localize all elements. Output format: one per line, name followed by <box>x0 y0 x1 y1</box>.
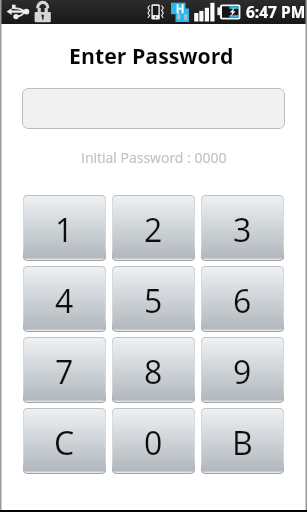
staticText: 8 <box>144 350 163 394</box>
button[interactable] <box>22 88 285 129</box>
staticText: Initial Password : 0000 <box>81 148 227 167</box>
button[interactable]: 5 <box>112 266 195 332</box>
staticText: B <box>232 421 253 465</box>
button[interactable]: 7 <box>23 337 106 403</box>
staticText: 7 <box>55 350 74 394</box>
button[interactable]: 4 <box>23 266 106 332</box>
staticText: 4 <box>55 279 74 323</box>
button[interactable]: B <box>201 408 284 474</box>
staticText: C <box>54 421 75 465</box>
staticText: 6 <box>233 279 252 323</box>
staticText: 0 <box>144 421 163 465</box>
button[interactable]: 8 <box>112 337 195 403</box>
staticText: Enter Password <box>69 41 234 65</box>
staticText: 5 <box>144 279 163 323</box>
staticText: 6:47 PM <box>246 1 306 22</box>
button[interactable]: 1 <box>23 195 106 261</box>
staticText: 1 <box>55 208 74 252</box>
staticText: 9 <box>233 350 252 394</box>
button[interactable]: 9 <box>201 337 284 403</box>
button[interactable]: 3 <box>201 195 284 261</box>
staticText: 3 <box>233 208 252 252</box>
button[interactable]: 6 <box>201 266 284 332</box>
staticText: 2 <box>144 208 163 252</box>
button[interactable]: 2 <box>112 195 195 261</box>
button[interactable]: 0 <box>112 408 195 474</box>
button[interactable]: C <box>23 408 106 474</box>
